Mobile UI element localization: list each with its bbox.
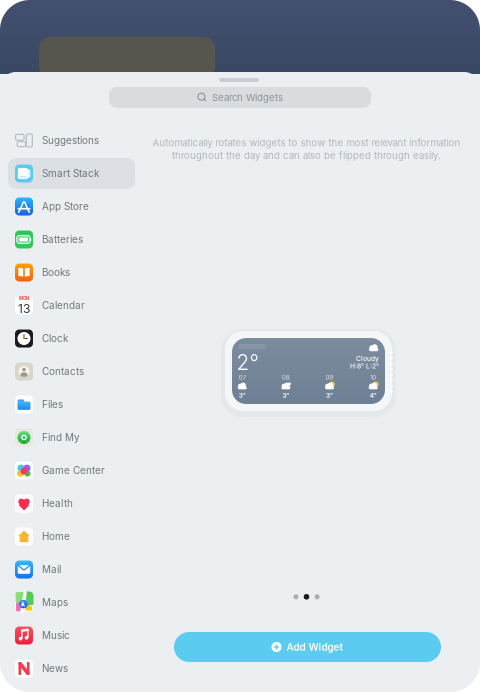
staticText: Files — [42, 398, 63, 410]
button[interactable]: Batteries — [8, 224, 135, 255]
staticText: Smart Stack — [42, 167, 99, 179]
staticText: Health — [42, 497, 73, 509]
button[interactable]: Find My — [8, 422, 135, 453]
button[interactable]: Smart Stack — [8, 158, 135, 189]
staticText: 09 — [325, 374, 333, 381]
button[interactable]: Mail — [8, 554, 135, 585]
button[interactable]: Maps — [8, 587, 135, 618]
button[interactable]: Add Widget — [174, 632, 441, 662]
staticText: Calendar — [42, 299, 85, 311]
staticText: Add Widget — [286, 641, 343, 653]
staticText: 07 — [239, 374, 246, 381]
staticText: 3° — [326, 391, 333, 399]
button[interactable]: Suggestions — [8, 125, 135, 156]
staticText: Cloudy — [356, 354, 379, 363]
staticText: App Store — [42, 200, 89, 212]
staticText: Books — [42, 266, 70, 278]
staticText: 10 — [370, 374, 376, 381]
button[interactable]: Notes — [8, 686, 135, 692]
button[interactable]: Contacts — [8, 356, 135, 387]
staticText: Search Widgets — [212, 92, 283, 103]
staticText: 2° — [237, 350, 259, 375]
staticText: Mail — [42, 563, 61, 575]
staticText: Home — [42, 530, 70, 542]
button[interactable]: Search Widgets — [109, 87, 371, 108]
button[interactable]: Game Center — [8, 455, 135, 486]
staticText: Game Center — [42, 464, 105, 476]
staticText: H:8° L:2° — [350, 362, 379, 370]
button[interactable]: Clock — [8, 323, 135, 354]
staticText: 13 — [18, 301, 30, 316]
staticText: Contacts — [42, 365, 84, 377]
button[interactable]: Home — [8, 521, 135, 552]
button[interactable]: Files — [8, 389, 135, 420]
button[interactable]: Books — [8, 257, 135, 288]
button[interactable]: Music — [8, 620, 135, 651]
staticText: 3° — [239, 391, 246, 399]
staticText: throughout the day and can also be flipp… — [172, 150, 441, 161]
staticText: Find My — [42, 431, 80, 443]
staticText: Suggestions — [42, 134, 99, 146]
button[interactable]: MON — [8, 290, 135, 321]
staticText: Automatically rotates widgets to show th… — [152, 137, 460, 149]
button[interactable]: Health — [8, 488, 135, 519]
staticText: 4° — [370, 391, 377, 399]
staticText: Music — [42, 629, 70, 641]
button[interactable]: App Store — [8, 191, 135, 222]
staticText: 3° — [282, 391, 289, 399]
staticText: News — [42, 662, 68, 674]
staticText: Batteries — [42, 233, 83, 245]
button[interactable]: News — [8, 653, 135, 684]
staticText: MON — [19, 296, 29, 301]
staticText: 08 — [282, 374, 290, 381]
staticText: Maps — [42, 596, 68, 608]
staticText: Clock — [42, 332, 68, 344]
